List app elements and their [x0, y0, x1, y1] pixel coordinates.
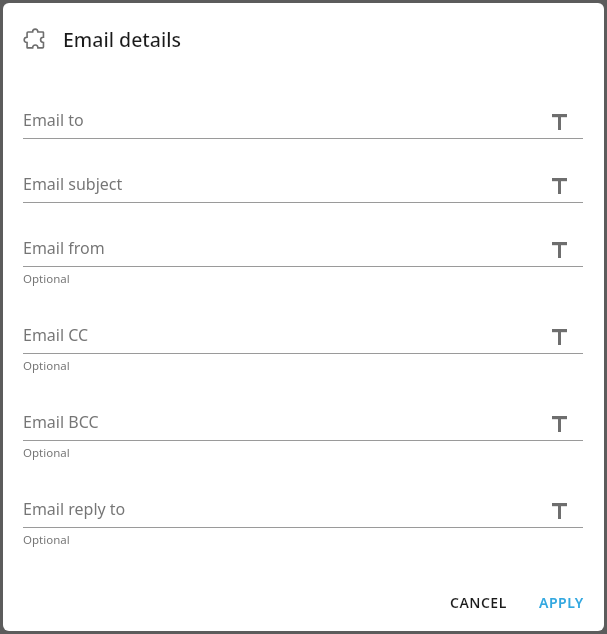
staticText: Email to [23, 109, 549, 131]
button[interactable]: APPLY [531, 585, 592, 619]
staticText: Optional [23, 358, 70, 374]
button[interactable]: Insert text variable [549, 501, 570, 520]
other: Extension [24, 28, 47, 51]
button[interactable]: Email CC [3, 324, 604, 411]
button[interactable]: Email BCC [3, 411, 604, 498]
staticText: Email reply to [23, 498, 549, 520]
staticText: Email BCC [23, 411, 549, 433]
staticText: CANCEL [450, 593, 507, 611]
button[interactable]: Email reply to [3, 498, 604, 585]
button[interactable]: Insert text variable [549, 112, 570, 131]
button[interactable]: Insert text variable [549, 414, 570, 433]
button[interactable]: Email subject [3, 173, 604, 237]
staticText: Email details [63, 26, 181, 53]
button[interactable]: Insert text variable [549, 240, 570, 259]
staticText: Email subject [23, 173, 549, 195]
staticText: Email from [23, 237, 549, 259]
staticText: Email CC [23, 324, 549, 346]
button[interactable]: Email to [3, 109, 604, 173]
button[interactable]: Insert text variable [549, 327, 570, 346]
staticText: Optional [23, 532, 70, 548]
button[interactable]: Email from [3, 237, 604, 324]
button[interactable]: CANCEL [442, 585, 515, 619]
staticText: Optional [23, 445, 70, 461]
staticText: APPLY [539, 593, 584, 611]
button[interactable]: Insert text variable [549, 176, 570, 195]
staticText: Optional [23, 271, 70, 287]
